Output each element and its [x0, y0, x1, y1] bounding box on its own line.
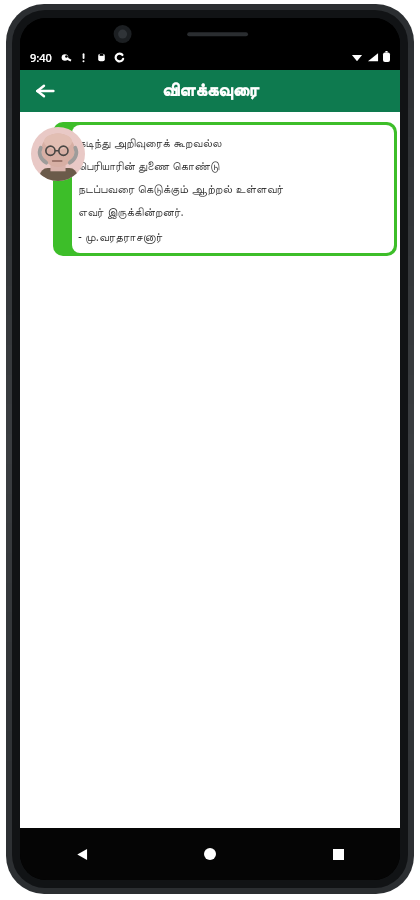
staticText: பெரியாரின் துணை கொண்டு [78, 157, 220, 173]
other: Author portrait [31, 127, 85, 181]
button[interactable]: கடிந்து அறிவுரைக் கூறவல்ல [53, 122, 397, 256]
button[interactable]: Back [62, 834, 102, 874]
button[interactable]: Home [190, 834, 230, 874]
staticText: எவர் இருக்கின்றனர். [78, 203, 184, 219]
staticText: - மு.வரதராசனார் [78, 228, 163, 244]
staticText: நடப்பவரை கெடுக்கும் ஆற்றல் உள்ளவர் [78, 180, 284, 196]
button[interactable]: Back [26, 72, 64, 110]
staticText: கடிந்து அறிவுரைக் கூறவல்ல [78, 134, 222, 150]
button[interactable]: Recent apps [318, 834, 358, 874]
staticText: 9:40 [30, 50, 52, 65]
staticText: விளக்கவுரை [162, 82, 259, 100]
